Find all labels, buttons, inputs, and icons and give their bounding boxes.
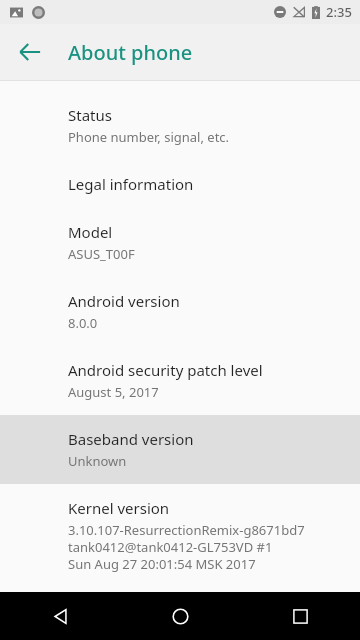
staticText: 2:35 [326,3,352,21]
staticText: Kernel version [68,498,170,518]
staticText: ASUS_T00F [68,245,135,263]
staticText: Android security patch level [68,360,263,380]
button[interactable]: Android security patch level [0,346,360,415]
button[interactable]: Baseband version [0,415,360,484]
staticText: Phone number, signal, etc. [68,128,230,146]
staticText: August 5, 2017 [68,383,159,401]
staticText: Unknown [68,452,127,470]
button[interactable]: Kernel version [0,484,360,587]
button[interactable]: Status [0,91,360,160]
staticText: 3.10.107-ResurrectionRemix-g8671bd7 tank… [68,521,305,573]
button[interactable]: Recent apps [240,592,360,640]
button[interactable]: Android version [0,277,360,346]
staticText: About phone [68,39,193,66]
staticText: Model [68,222,113,242]
button[interactable]: Model [0,208,360,277]
button[interactable]: Back [0,592,120,640]
staticText: Android version [68,291,180,311]
staticText: Status [68,105,112,125]
button[interactable]: Back [6,28,54,76]
staticText: Legal information [68,174,194,194]
staticText: Baseband version [68,429,194,449]
button[interactable]: Legal information [0,160,360,208]
staticText: 8.0.0 [68,314,98,332]
button[interactable]: Home [120,592,240,640]
